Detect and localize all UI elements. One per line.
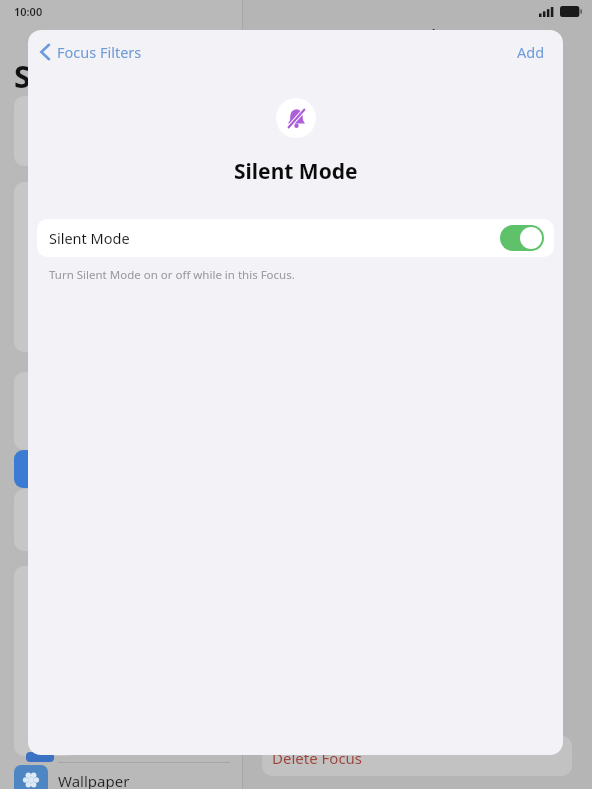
staticText: Personal Focus	[372, 24, 482, 44]
button[interactable]: Focus Filters	[34, 38, 148, 66]
button[interactable]: Add	[511, 38, 551, 66]
staticText: Turn Silent Mode on or off while in this…	[49, 267, 295, 283]
staticText: Add	[517, 42, 545, 62]
button[interactable]: Silent Mode toggle	[500, 225, 544, 251]
staticText: 10:00	[14, 4, 43, 19]
staticText: Silent Mode	[49, 228, 130, 248]
staticText: S	[14, 56, 31, 97]
staticText: Focus Filters	[57, 42, 142, 62]
staticText: Wallpaper	[58, 771, 130, 789]
staticText: Focus	[272, 24, 313, 44]
staticText: Silent Mode	[234, 157, 358, 186]
staticText: Delete Focus	[272, 748, 363, 768]
button[interactable]: Silent Mode	[37, 219, 554, 257]
